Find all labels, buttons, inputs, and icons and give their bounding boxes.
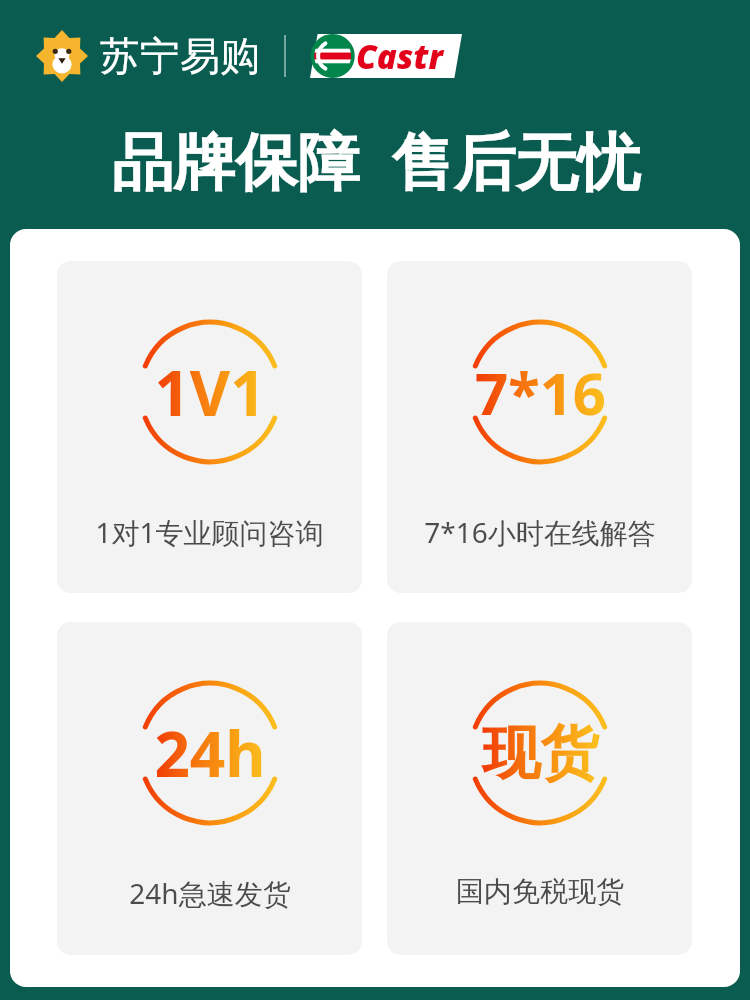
staticText: 品牌保障 售后无忧 (111, 118, 640, 203)
button[interactable]: 1V1 (57, 261, 362, 593)
staticText: 1V1 (154, 350, 266, 434)
button[interactable]: 24h (57, 622, 362, 955)
button[interactable]: 现货 (387, 622, 692, 955)
staticText: 24h (154, 711, 266, 795)
staticText: 7*16 (475, 353, 606, 432)
button[interactable]: Castrol Logo (310, 34, 462, 78)
staticText: 7*16小时在线解答 (424, 513, 656, 551)
button[interactable]: 7*16 (387, 261, 692, 593)
staticText: 24h急速发货 (129, 874, 291, 912)
staticText: 国内免税现货 (456, 874, 624, 909)
staticText: 现货 (482, 717, 598, 790)
staticText: 苏宁易购 (100, 31, 260, 81)
staticText: Castrol (356, 34, 462, 78)
staticText: 1对1专业顾问咨询 (95, 513, 324, 551)
button[interactable]: Suning Logo (36, 30, 88, 82)
